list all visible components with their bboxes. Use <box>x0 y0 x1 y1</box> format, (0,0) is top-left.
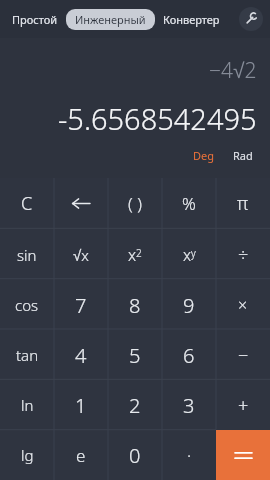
staticText: 5 <box>129 342 141 369</box>
button[interactable]: xy <box>162 229 216 280</box>
button[interactable]: ( ) <box>108 178 162 229</box>
staticText: -5.6568542495 <box>58 99 257 138</box>
staticText: × <box>238 294 248 316</box>
staticText: √x <box>73 245 89 265</box>
staticText: Deg <box>193 148 214 163</box>
button[interactable]: Settings <box>239 7 263 31</box>
button[interactable]: Простой <box>7 9 63 30</box>
button[interactable]: − <box>216 330 270 380</box>
staticText: 2 <box>129 392 141 419</box>
staticText: Конвертер <box>163 12 220 27</box>
staticText: sin <box>17 245 37 265</box>
button[interactable]: 3 <box>162 380 216 430</box>
staticText: Простой <box>12 12 58 27</box>
staticText: 7 <box>75 292 87 319</box>
staticText: π <box>237 191 249 216</box>
staticText: e <box>76 444 86 467</box>
button[interactable]: C <box>0 178 54 229</box>
staticText: xy <box>183 244 196 266</box>
button[interactable]: Backspace <box>54 178 108 229</box>
staticText: ( ) <box>128 192 142 215</box>
button[interactable]: 9 <box>162 280 216 330</box>
button[interactable]: Инженерный <box>66 9 155 30</box>
button[interactable]: π <box>216 178 270 229</box>
button[interactable]: √x <box>54 229 108 280</box>
staticText: cos <box>15 295 39 315</box>
staticText: 9 <box>183 292 195 319</box>
button[interactable]: 0 <box>108 430 162 480</box>
staticText: · <box>187 444 192 467</box>
staticText: −4√2 <box>209 56 257 85</box>
button[interactable]: Equals <box>216 430 270 480</box>
button[interactable]: 7 <box>54 280 108 330</box>
button[interactable]: + <box>216 380 270 430</box>
staticText: lg <box>21 445 34 465</box>
staticText: 0 <box>129 442 141 469</box>
staticText: Rad <box>233 148 253 163</box>
button[interactable]: Deg <box>189 147 218 164</box>
button[interactable]: · <box>162 430 216 480</box>
staticText: % <box>182 192 196 215</box>
staticText: 4 <box>75 342 87 369</box>
staticText: + <box>238 393 249 418</box>
button[interactable]: % <box>162 178 216 229</box>
staticText: 6 <box>183 342 195 369</box>
button[interactable]: ln <box>0 380 54 430</box>
staticText: ln <box>21 395 34 415</box>
button[interactable]: ÷ <box>216 229 270 280</box>
staticText: 3 <box>183 392 195 419</box>
staticText: C <box>21 191 33 216</box>
button[interactable]: x2 <box>108 229 162 280</box>
button[interactable]: × <box>216 280 270 330</box>
button[interactable]: Rad <box>229 147 257 164</box>
staticText: tan <box>16 345 39 365</box>
staticText: ÷ <box>238 242 249 267</box>
button[interactable]: 2 <box>108 380 162 430</box>
button[interactable]: 6 <box>162 330 216 380</box>
staticText: 8 <box>129 292 141 319</box>
button[interactable]: lg <box>0 430 54 480</box>
button[interactable]: e <box>54 430 108 480</box>
button[interactable]: 8 <box>108 280 162 330</box>
button[interactable]: 1 <box>54 380 108 430</box>
staticText: Инженерный <box>75 12 146 27</box>
button[interactable]: sin <box>0 229 54 280</box>
button[interactable]: 5 <box>108 330 162 380</box>
button[interactable]: tan <box>0 330 54 380</box>
button[interactable]: Конвертер <box>158 9 225 30</box>
button[interactable]: cos <box>0 280 54 330</box>
button[interactable]: 4 <box>54 330 108 380</box>
staticText: 1 <box>75 392 87 419</box>
staticText: − <box>238 343 249 368</box>
staticText: x2 <box>128 244 142 266</box>
